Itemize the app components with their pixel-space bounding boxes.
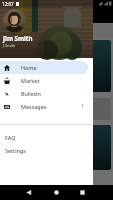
staticText: Settings: [5, 147, 26, 154]
staticText: Jim Smith: [3, 34, 33, 42]
staticText: Market: [21, 77, 40, 84]
staticText: Home: [21, 64, 37, 71]
button[interactable]: Bulletin: [0, 87, 88, 100]
staticText: FAQ: [5, 134, 16, 141]
staticText: 12:07: [2, 1, 14, 7]
button[interactable]: Settings: [0, 144, 93, 157]
other: Profile photo: [3, 9, 26, 32]
staticText: 1: [81, 103, 84, 110]
staticText: J.Smith: [3, 43, 16, 48]
staticText: Bulletin: [21, 90, 41, 97]
staticText: Messages: [21, 103, 47, 110]
button[interactable]: Home: [0, 61, 88, 74]
button[interactable]: Messages: [0, 100, 88, 113]
button[interactable]: FAQ: [0, 131, 93, 144]
button[interactable]: Market: [0, 74, 88, 87]
